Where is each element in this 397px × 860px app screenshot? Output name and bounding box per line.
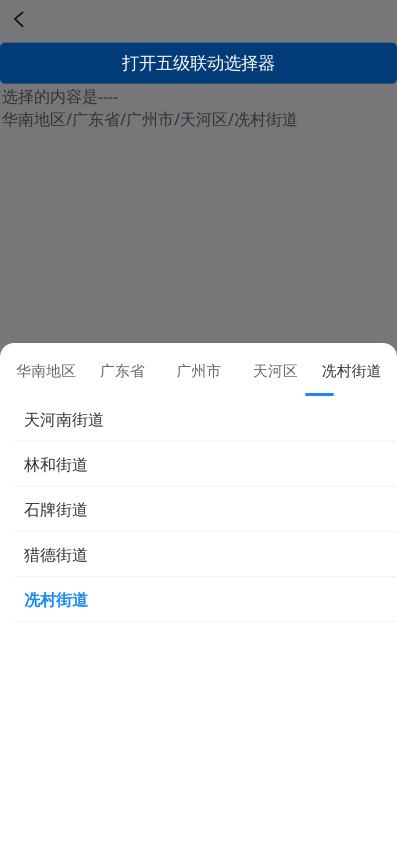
button[interactable]: 天河区 <box>237 345 314 397</box>
button[interactable]: 广东省 <box>84 345 161 397</box>
staticText: 打开五级联动选择器 <box>122 53 275 74</box>
button[interactable]: 冼村街道 <box>0 577 397 622</box>
staticText: 选择的内容是---- <box>2 86 118 107</box>
button[interactable]: 林和街道 <box>0 442 397 487</box>
button[interactable]: 广州市 <box>161 345 237 397</box>
staticText: 华南地区/广东省/广州市/天河区/冼村街道 <box>2 108 298 130</box>
staticText: 广东省 <box>100 362 145 380</box>
staticText: 广州市 <box>176 362 221 380</box>
staticText: 石牌街道 <box>24 500 88 520</box>
button[interactable]: 天河南街道 <box>0 397 397 442</box>
staticText: 天河区 <box>253 362 298 380</box>
staticText: 冼村街道 <box>24 590 88 610</box>
button[interactable]: 石牌街道 <box>0 487 397 532</box>
staticText: 天河南街道 <box>24 410 104 430</box>
button[interactable]: 华南地区 <box>8 345 84 397</box>
staticText: 华南地区 <box>16 362 76 380</box>
button[interactable]: 猎德街道 <box>0 532 397 577</box>
staticText: 冼村街道 <box>322 362 382 380</box>
staticText: 猎德街道 <box>24 545 88 565</box>
button[interactable]: 打开五级联动选择器 <box>0 43 397 84</box>
staticText: 林和街道 <box>24 455 88 475</box>
button[interactable]: Back <box>0 0 36 36</box>
button[interactable]: 冼村街道 <box>314 345 390 397</box>
